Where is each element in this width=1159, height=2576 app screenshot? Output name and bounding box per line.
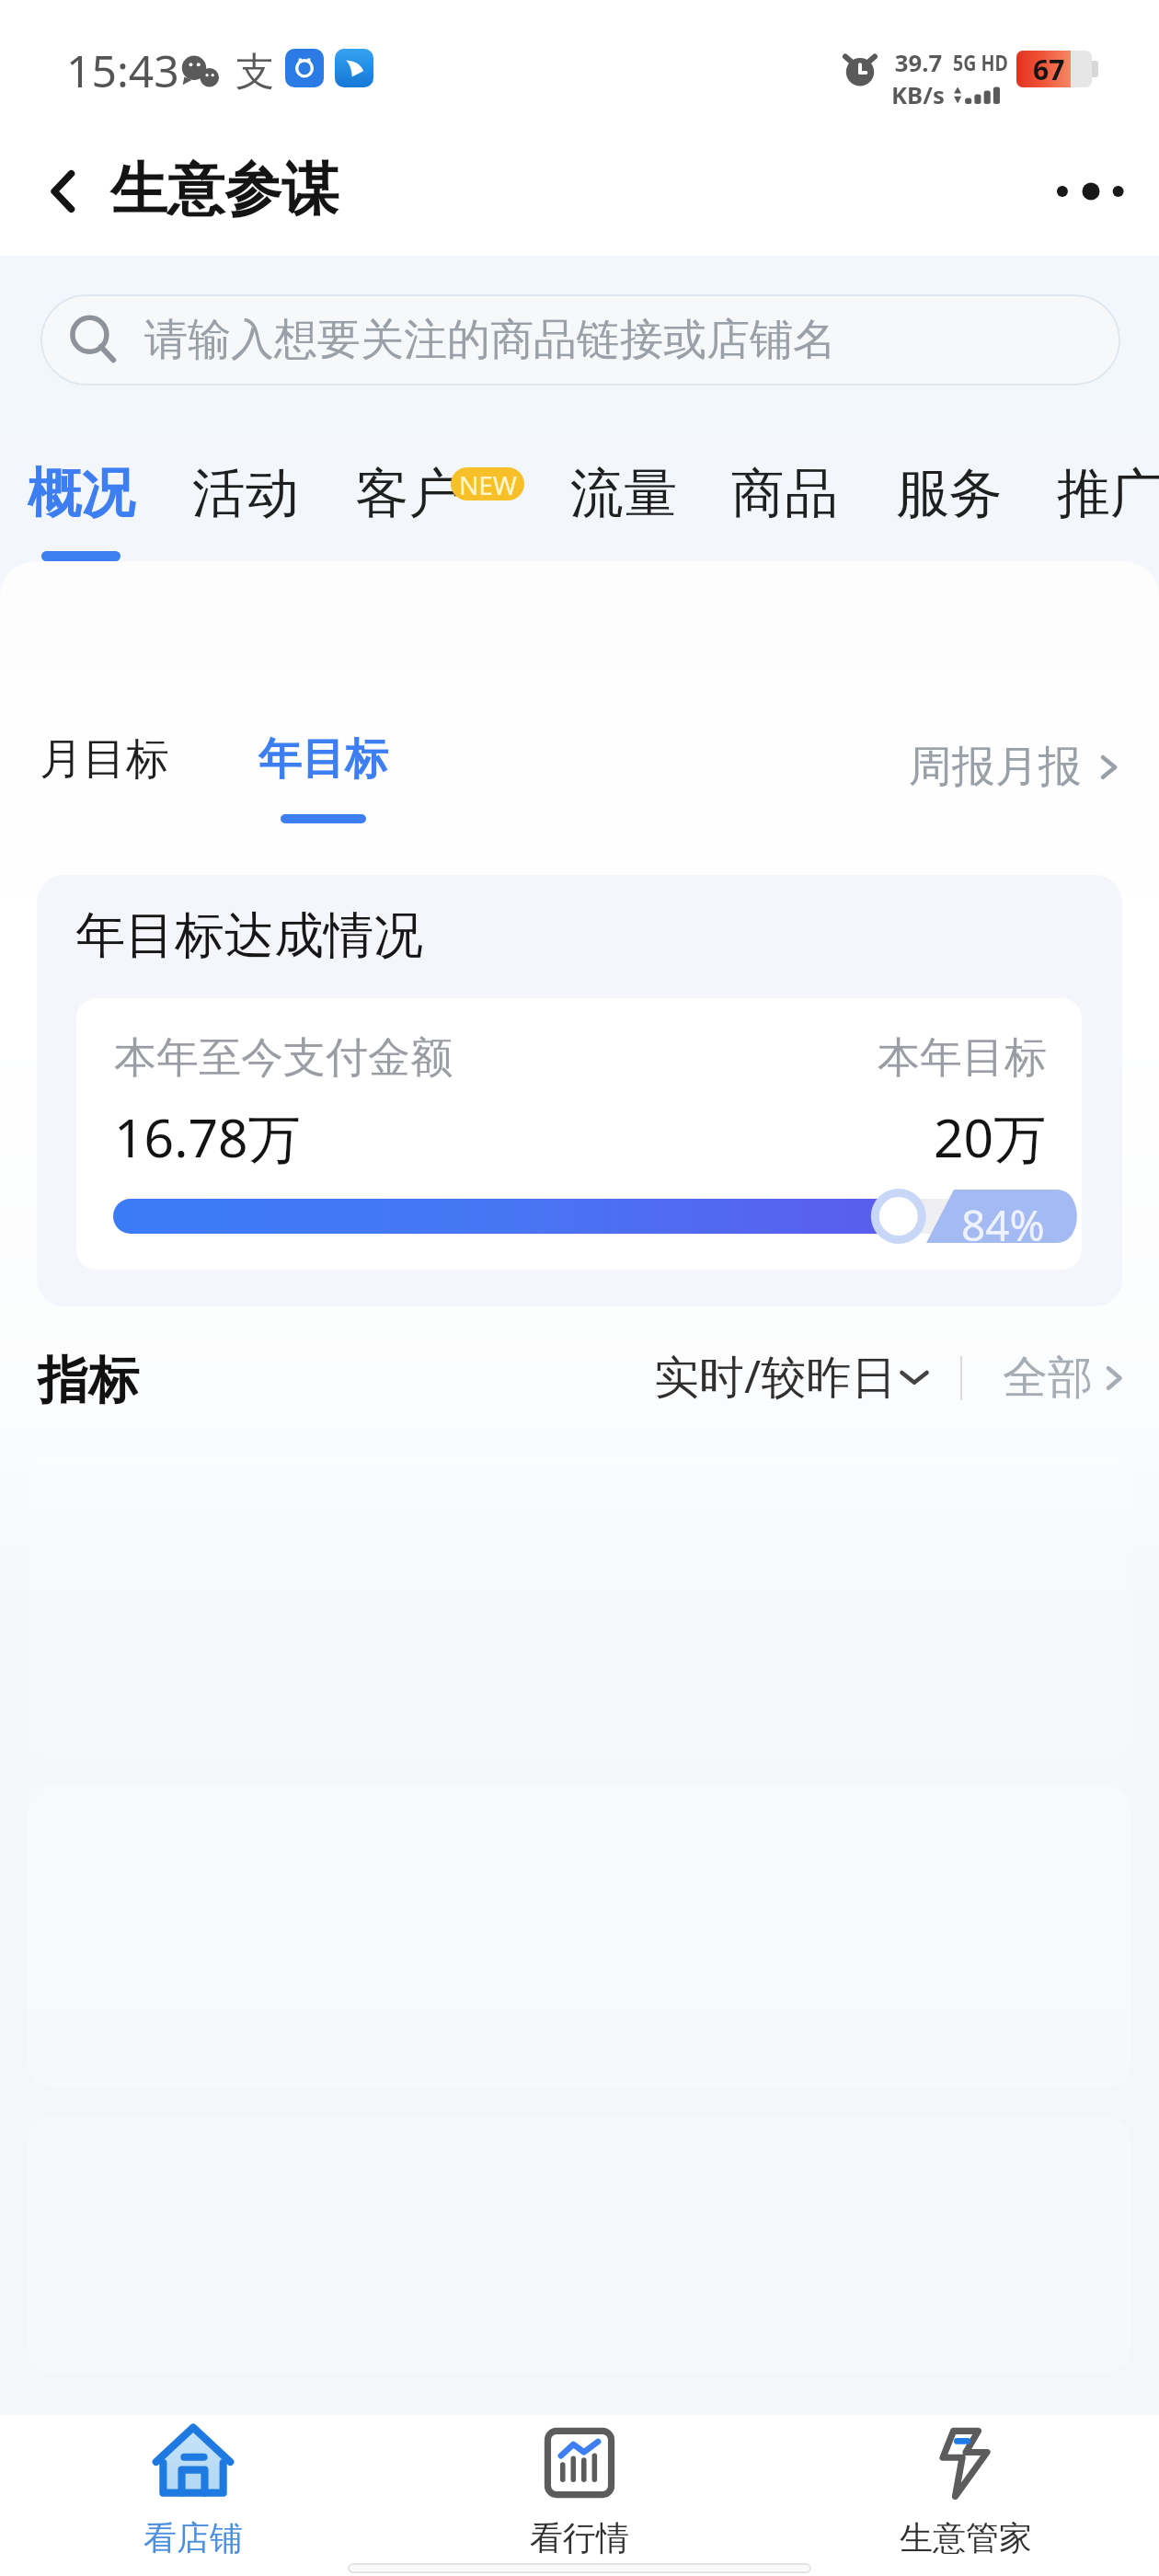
button[interactable]: 客户 [340,447,467,585]
button[interactable]: 实时/较昨日 [654,1345,930,1407]
staticText: 84% [961,1196,1045,1254]
staticText: KB/s [891,78,945,110]
staticText: 请输入想要关注的商品链接或店铺名 [144,313,836,367]
staticText: 活动 [192,460,299,527]
button[interactable]: 推广 [1042,447,1159,585]
staticText: 月目标 [40,732,169,787]
button[interactable]: 流量 [556,447,683,585]
staticText: 周报月报 [909,740,1082,794]
button[interactable]: 概况 [13,447,149,585]
staticText: 概况 [28,460,134,527]
staticText: 服务 [896,460,1003,527]
staticText: 年目标 [258,732,388,787]
button[interactable]: 全部 [1003,1350,1128,1407]
staticText: 客户 [355,460,462,527]
staticText: 生意管家 [900,2517,1032,2559]
button[interactable]: 看行情 [386,2415,773,2570]
staticText: 本年目标 [878,1031,1047,1085]
button[interactable]: 商品 [717,447,843,585]
staticText: 年目标达成情况 [75,904,423,967]
staticText: 16.78万 [114,1101,301,1173]
staticText: 商品 [731,460,838,527]
button[interactable]: Back [24,154,99,229]
staticText: 实时/较昨日 [654,1345,897,1407]
staticText: 39.7 [895,46,942,78]
staticText: NEW [459,467,517,500]
staticText: 20万 [934,1101,1047,1173]
staticText: 全部 [1003,1350,1093,1407]
staticText: 5G HD [953,48,1008,77]
button[interactable]: 活动 [178,447,304,585]
button[interactable]: 请输入想要关注的商品链接或店铺名 [40,294,1120,385]
staticText: 支 [235,48,274,97]
button[interactable]: 服务 [881,447,1008,585]
button[interactable]: More options [1045,145,1137,237]
staticText: 看店铺 [143,2517,243,2559]
staticText: 生意参谋 [110,154,339,225]
button[interactable]: 年目标 [258,732,388,823]
button[interactable]: 生意管家 [773,2415,1159,2570]
button[interactable]: 看店铺 [0,2415,386,2570]
staticText: 推广 [1057,460,1159,527]
button[interactable]: 月目标 [40,732,169,823]
staticText: 15:43 [66,40,179,100]
staticText: 看行情 [530,2517,629,2559]
staticText: 本年至今支付金额 [114,1031,453,1085]
staticText: 流量 [570,460,677,527]
staticText: 指标 [38,1349,139,1412]
button[interactable]: 周报月报 [909,740,1122,794]
staticText: 67 [1033,51,1065,87]
